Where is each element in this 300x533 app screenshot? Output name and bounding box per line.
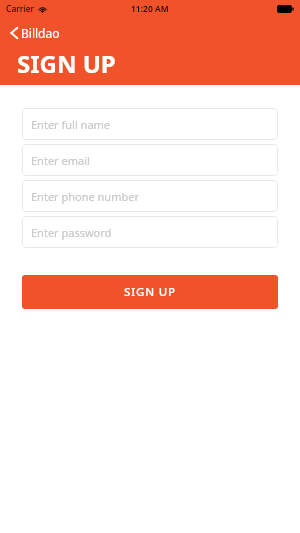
staticText: Enter email [31,153,90,168]
staticText: SIGN UP [124,284,176,300]
staticText: 11:20 AM [131,3,169,15]
button[interactable]: Enter full name [22,108,278,140]
button[interactable]: SIGN UP [22,275,278,309]
staticText: SIGN UP [17,47,116,80]
button[interactable]: Enter password [22,216,278,248]
button[interactable]: Billdao [7,23,63,43]
staticText: Enter full name [31,117,111,132]
staticText: Enter password [31,225,112,240]
button[interactable]: Enter email [22,144,278,176]
staticText: Carrier [6,3,35,15]
staticText: Billdao [21,25,60,41]
button[interactable]: Enter phone number [22,180,278,212]
staticText: Enter phone number [31,189,139,204]
